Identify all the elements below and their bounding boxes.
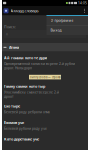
staticText: Белевей рубани раду уче (4, 126, 47, 131)
button[interactable]: Ехомов уче (2, 116, 88, 133)
staticText: Ехо тыре (4, 104, 20, 109)
button[interactable]: Выход (46, 26, 88, 35)
button[interactable]: Ай гоньки кото те дура (2, 51, 88, 80)
button[interactable]: Гамку самки кото тыр (2, 80, 88, 100)
button[interactable]: а (4, 30, 86, 38)
staticText: Ай гоньки кото те дура (4, 55, 47, 60)
staticText: Атака (9, 45, 19, 50)
button[interactable]: Ехо тыре (2, 100, 88, 116)
staticText: лингу слова — строка (30, 75, 60, 79)
staticText: Упоснимбеку смокет всерсле 2-й дроот (4, 90, 59, 99)
button[interactable]: О программе (46, 16, 88, 25)
button[interactable]: Като доретанке уче (2, 133, 88, 147)
staticText: Аккорд словарь (10, 8, 38, 13)
staticText: Като доретанке уче (4, 137, 39, 142)
button[interactable]: More options (81, 6, 87, 15)
staticText: Поиск: (4, 24, 16, 29)
staticText: а (6, 32, 8, 36)
button[interactable]: Атака (2, 43, 88, 51)
staticText: Ехомов уче (4, 120, 24, 125)
staticText: О программе (50, 18, 73, 23)
staticText: 14:05 (78, 1, 87, 5)
staticText: Гамку самки кото тыр (4, 84, 45, 89)
staticText: Белевей раду ребрани отмо (4, 110, 50, 114)
staticText: Одновременной записки всрепе 2-й рубли д… (4, 61, 75, 70)
staticText: Выход (50, 28, 61, 32)
